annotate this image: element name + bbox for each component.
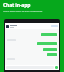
button[interactable] (47, 53, 57, 56)
staticText: Chat in-app (3, 2, 31, 9)
button[interactable]: Tablet showing in-app chat (4, 19, 60, 72)
button[interactable]: Avatar (5, 23, 59, 29)
button[interactable] (41, 33, 57, 36)
button[interactable] (43, 48, 57, 51)
other: Avatar (6, 25, 9, 28)
button[interactable] (37, 42, 57, 45)
button[interactable]: Send (55, 66, 58, 69)
staticText: Lorem ipsum dolor sit amet consectetuer (3, 10, 43, 13)
